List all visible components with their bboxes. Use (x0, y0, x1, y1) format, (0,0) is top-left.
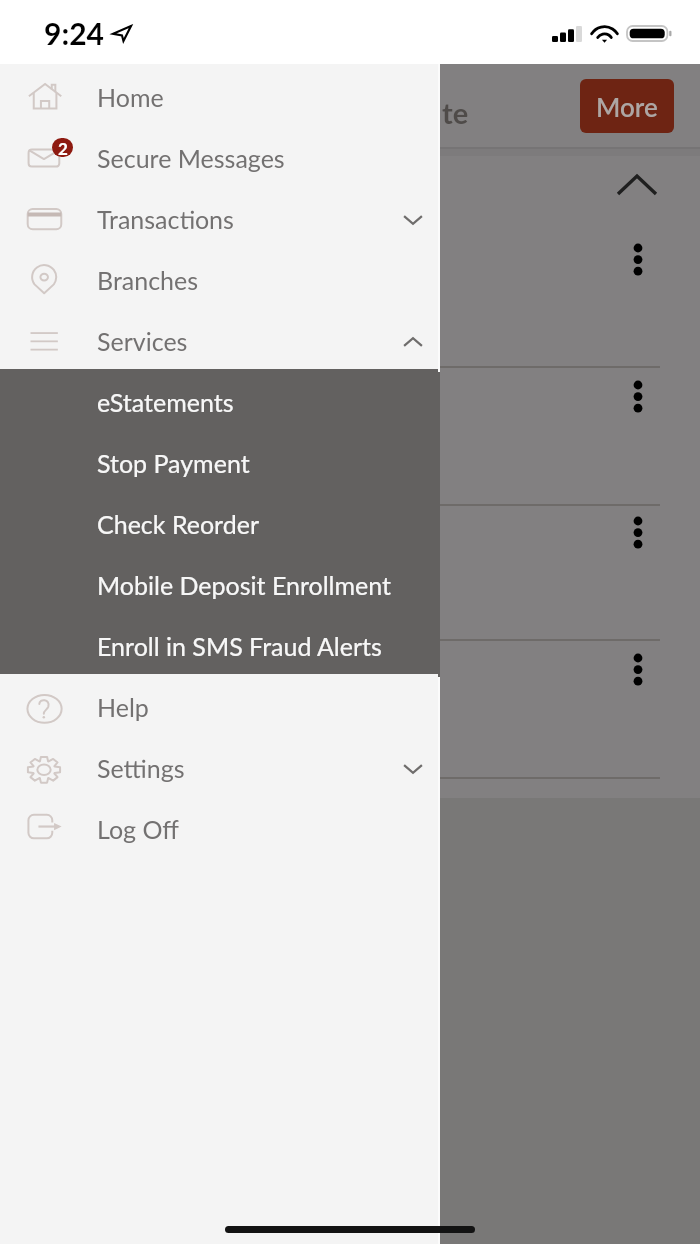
button[interactable]: Settings (0, 735, 440, 796)
other: Collapse (618, 176, 656, 194)
staticText: Mobile Deposit Enrollment (97, 570, 392, 600)
button[interactable]: 2 (0, 125, 440, 186)
button[interactable]: More options (626, 241, 650, 279)
button[interactable]: Enroll in SMS Fraud Alerts (0, 613, 440, 674)
staticText: More (596, 91, 658, 122)
other: Expand (403, 764, 423, 774)
staticText: Home (97, 82, 164, 112)
staticText: Secure Messages (97, 143, 285, 173)
button[interactable]: Branches (0, 247, 440, 308)
staticText: Stop Payment (97, 448, 250, 478)
staticText: Services (97, 326, 188, 356)
other: Collapse (403, 337, 423, 347)
staticText: 9:24 (44, 15, 104, 51)
button[interactable]: Check Reorder (0, 491, 440, 552)
button[interactable]: More options (626, 651, 650, 689)
staticText: Help (97, 692, 149, 722)
staticText: eStatements (97, 387, 234, 417)
button[interactable]: More options (626, 378, 650, 416)
button[interactable]: Mobile Deposit Enrollment (0, 552, 440, 613)
button[interactable]: More options (626, 514, 650, 552)
staticText: Settings (97, 753, 185, 783)
other: Expand (403, 215, 423, 225)
button[interactable]: Transactions (0, 186, 440, 247)
button[interactable]: Log Off (0, 796, 440, 857)
button[interactable]: Services (0, 308, 440, 369)
staticText: 2 (58, 138, 68, 157)
button[interactable]: Help (0, 674, 440, 735)
staticText: Log Off (97, 814, 179, 844)
staticText: Check Reorder (97, 509, 260, 539)
staticText: Transactions (97, 204, 234, 234)
button[interactable]: Home (0, 64, 440, 125)
staticText: Enroll in SMS Fraud Alerts (97, 631, 382, 661)
button[interactable]: eStatements (0, 369, 440, 430)
staticText: te (442, 95, 469, 130)
button[interactable]: Stop Payment (0, 430, 440, 491)
staticText: Branches (97, 265, 199, 295)
button[interactable]: More (580, 79, 674, 133)
